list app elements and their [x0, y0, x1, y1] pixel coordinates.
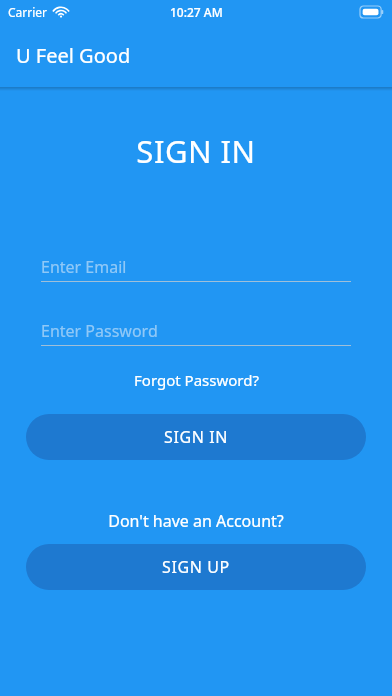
staticText: Forgot Password?	[134, 370, 259, 390]
staticText: Carrier	[8, 4, 48, 20]
staticText: SIGN IN	[164, 426, 228, 448]
button[interactable]: Enter Password	[41, 317, 351, 346]
staticText: Don't have an Account?	[108, 510, 284, 532]
button[interactable]: Enter Email	[41, 253, 351, 282]
button[interactable]: SIGN UP	[26, 544, 366, 590]
button[interactable]: Forgot Password?	[0, 368, 392, 392]
staticText: SIGN UP	[162, 556, 230, 578]
staticText: 10:27 AM	[170, 4, 223, 20]
staticText: Enter Email	[41, 256, 127, 278]
button[interactable]: SIGN IN	[26, 414, 366, 460]
staticText: SIGN IN	[0, 130, 392, 172]
staticText: U Feel Good	[16, 42, 131, 69]
staticText: Enter Password	[41, 320, 158, 342]
